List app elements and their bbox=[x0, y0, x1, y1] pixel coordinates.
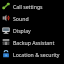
button[interactable]: Call settings bbox=[0, 0, 64, 12]
button[interactable]: Sound bbox=[0, 12, 64, 24]
other: Display bbox=[2, 26, 10, 34]
button[interactable]: Location & security bbox=[0, 48, 64, 60]
staticText: Location & security bbox=[13, 51, 60, 58]
staticText: Backup Assistant bbox=[13, 39, 55, 46]
other: Backup Assistant bbox=[2, 38, 10, 46]
button[interactable]: Display bbox=[0, 24, 64, 36]
other: Sound bbox=[2, 14, 10, 22]
staticText: Call settings bbox=[13, 3, 43, 10]
other: Location & security bbox=[2, 50, 10, 58]
staticText: Sound bbox=[13, 15, 29, 22]
other: Call settings bbox=[2, 2, 10, 10]
staticText: Display bbox=[13, 27, 31, 34]
button[interactable]: Backup Assistant bbox=[0, 36, 64, 48]
